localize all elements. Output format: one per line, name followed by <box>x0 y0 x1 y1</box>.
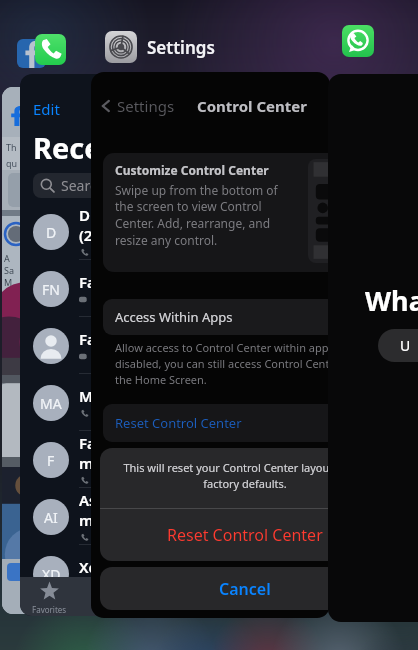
staticText: Sa <box>4 264 14 276</box>
staticText: Favorites <box>32 604 67 615</box>
staticText: FN <box>42 280 60 299</box>
button[interactable]: AI <box>20 488 172 545</box>
button[interactable]: D <box>20 203 172 260</box>
staticText: Settings <box>147 36 215 59</box>
button[interactable]: Search <box>33 173 159 198</box>
button[interactable]: FN <box>20 260 172 317</box>
staticText: mo <box>79 510 103 530</box>
button[interactable]: U <box>378 329 418 362</box>
button[interactable]: Facebook <box>17 39 46 68</box>
button[interactable]: Access Within Apps <box>103 299 330 335</box>
staticText: C <box>4 288 10 300</box>
staticText: Xo <box>79 557 98 577</box>
staticText: This will reset your Control Center layo… <box>123 460 330 491</box>
button[interactable]: Favorites <box>32 582 67 615</box>
button[interactable]: Reset Control Center <box>100 509 330 561</box>
staticText: D <box>46 223 57 242</box>
staticText: Th <box>6 141 17 153</box>
button[interactable]: Edit <box>20 74 172 616</box>
staticText: Reset Control Center <box>167 524 323 546</box>
staticText: Access Within Apps <box>115 308 233 326</box>
button[interactable]: XD <box>20 545 172 602</box>
staticText: Customize Control Center <box>115 162 269 178</box>
staticText: Di <box>79 205 95 225</box>
staticText: Recents <box>33 128 148 167</box>
staticText: Cancel <box>219 578 271 600</box>
button[interactable]: Edit <box>33 99 60 119</box>
button[interactable]: F <box>20 431 172 488</box>
button[interactable]: Settings <box>105 31 215 63</box>
button[interactable]: Reset Control Center <box>103 404 330 442</box>
button[interactable]: Settings <box>98 96 175 116</box>
staticText: Allow access to Control Center within ap… <box>115 340 330 387</box>
button[interactable]: Fa <box>20 317 172 374</box>
staticText: MA <box>40 394 62 413</box>
staticText: M <box>4 276 13 288</box>
staticText: Control Center <box>197 96 307 116</box>
staticText: M <box>79 386 93 406</box>
button[interactable]: Wha <box>328 74 418 622</box>
button[interactable]: Cancel <box>100 567 330 610</box>
staticText: Reset Control Center <box>115 414 242 432</box>
staticText: F <box>47 451 55 470</box>
staticText: Fa <box>79 433 96 453</box>
staticText: As <box>79 490 97 510</box>
staticText: Wha <box>365 282 418 319</box>
staticText: mo <box>79 453 103 473</box>
button[interactable]: Settings <box>91 72 330 618</box>
staticText: Search <box>61 176 106 195</box>
staticText: Fa <box>79 272 96 292</box>
button[interactable]: WhatsApp <box>342 25 374 57</box>
button[interactable]: Phone <box>35 34 66 65</box>
staticText: qu <box>6 157 18 169</box>
staticText: U <box>400 336 411 355</box>
staticText: Fa <box>79 329 96 349</box>
staticText: XD <box>42 565 61 584</box>
staticText: Settings <box>117 96 175 116</box>
button[interactable]: MA <box>20 374 172 431</box>
staticText: A <box>4 252 10 264</box>
staticText: Swipe up from the bottom of the screen t… <box>115 182 278 249</box>
staticText: Edit <box>33 99 60 119</box>
button[interactable]: Th <box>2 87 72 614</box>
staticText: AI <box>44 508 58 527</box>
staticText: (2 <box>79 225 93 245</box>
